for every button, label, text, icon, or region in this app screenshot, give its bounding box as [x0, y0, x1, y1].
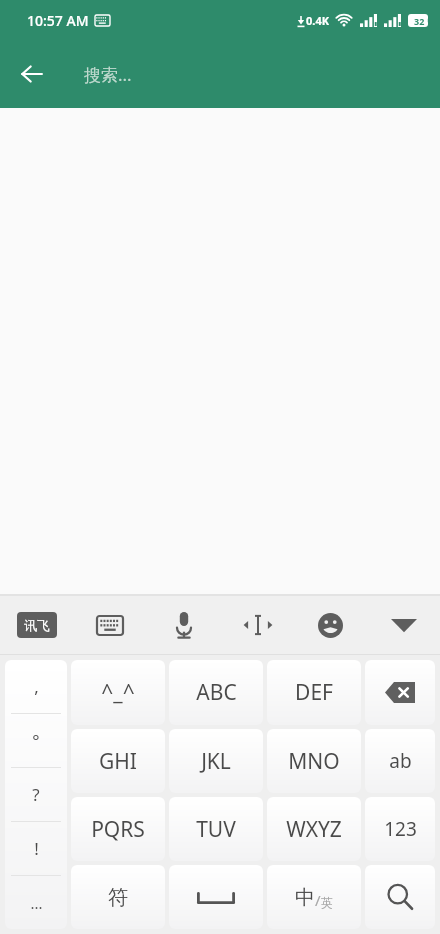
staticText: 32 [414, 15, 425, 27]
button[interactable]: ! [5, 822, 67, 875]
button[interactable]: ... [5, 876, 67, 929]
button[interactable]: , [5, 660, 67, 713]
button[interactable]: JKL [169, 729, 263, 793]
staticText: 10:57 AM [27, 11, 89, 30]
staticText: 中 [295, 885, 315, 910]
button[interactable]: MNO [267, 729, 361, 793]
button[interactable]: Hide keyboard [367, 596, 440, 654]
button[interactable]: 123 [365, 797, 435, 861]
staticText: 搜索... [84, 63, 132, 86]
button[interactable]: DEF [267, 660, 361, 725]
button[interactable]: GHI [71, 729, 165, 793]
staticText: 符 [108, 885, 128, 910]
button[interactable]: ? [5, 768, 67, 821]
button[interactable]: ABC [169, 660, 263, 725]
staticText: TUV [196, 815, 236, 844]
button[interactable]: ° [5, 714, 67, 767]
staticText: DEF [295, 678, 333, 707]
staticText: ^_^ [101, 678, 135, 707]
staticText: MNO [288, 747, 340, 776]
staticText: 0.4K [306, 13, 329, 28]
button[interactable]: Space [169, 865, 263, 929]
staticText: ? [32, 783, 40, 806]
button[interactable]: Switch Chinese English [267, 865, 361, 929]
button[interactable]: Back [8, 50, 56, 98]
staticText: GHI [99, 747, 137, 776]
button[interactable]: Emoji [294, 596, 367, 654]
button[interactable]: TUV [169, 797, 263, 861]
staticText: ABC [196, 678, 237, 707]
button[interactable]: Search [365, 865, 435, 929]
staticText: ! [34, 837, 39, 860]
staticText: / [315, 890, 321, 910]
button[interactable]: 讯飞 input method [0, 596, 73, 654]
button[interactable]: ^_^ [71, 660, 165, 725]
staticText: ° [32, 729, 40, 752]
button[interactable]: Keyboard layout [73, 596, 147, 654]
button[interactable]: Delete [365, 660, 435, 725]
button[interactable]: Move cursor [221, 596, 294, 654]
button[interactable]: WXYZ [267, 797, 361, 861]
staticText: 123 [384, 816, 417, 842]
staticText: ... [30, 893, 43, 913]
staticText: PQRS [91, 815, 145, 844]
button[interactable]: 搜索... [84, 50, 424, 98]
button[interactable]: ab [365, 729, 435, 793]
button[interactable]: PQRS [71, 797, 165, 861]
staticText: 讯飞 [24, 617, 50, 633]
button[interactable]: 符 [71, 865, 165, 929]
staticText: JKL [201, 747, 231, 776]
staticText: WXYZ [286, 815, 342, 844]
button[interactable]: Voice input [147, 596, 221, 654]
staticText: ab [389, 748, 412, 774]
staticText: , [34, 675, 39, 698]
staticText: 英 [321, 895, 333, 910]
